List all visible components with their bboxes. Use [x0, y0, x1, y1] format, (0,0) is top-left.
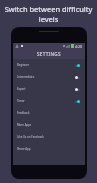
- button[interactable]: Expert: [13, 83, 85, 95]
- other: On: [75, 64, 80, 67]
- button[interactable]: Feedback: [13, 107, 85, 119]
- staticText: Beginner: [17, 63, 30, 67]
- staticText: More Apps: [17, 123, 32, 127]
- button[interactable]: Like Us on Facebook: [13, 131, 85, 143]
- staticText: Switch between difficulty levels: [2, 4, 95, 24]
- staticText: Timer: [17, 99, 25, 103]
- staticText: SETTINGS: [37, 51, 61, 57]
- other: Off: [75, 76, 80, 79]
- staticText: Expert: [17, 87, 26, 91]
- staticText: 4:20: [75, 44, 83, 49]
- staticText: Like Us on Facebook: [17, 135, 44, 139]
- button[interactable]: More Apps: [13, 119, 85, 131]
- staticText: Share App: [17, 147, 31, 151]
- staticText: Feedback: [17, 111, 30, 115]
- other: Off: [75, 88, 80, 91]
- button[interactable]: Share App: [13, 143, 85, 155]
- staticText: Intermediate: [17, 75, 35, 79]
- button[interactable]: Beginner: [13, 59, 85, 71]
- button[interactable]: Timer: [13, 95, 85, 107]
- other: On: [75, 100, 80, 103]
- button[interactable]: Intermediate: [13, 71, 85, 83]
